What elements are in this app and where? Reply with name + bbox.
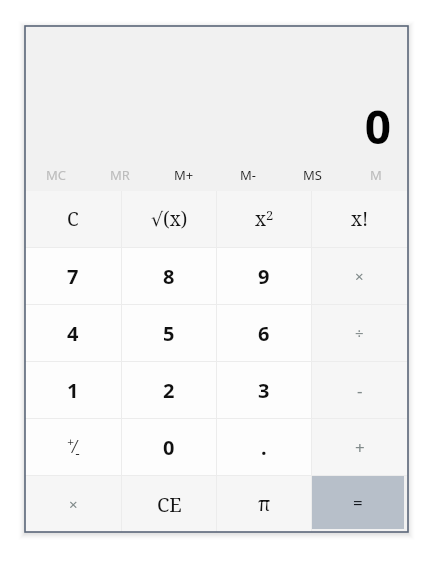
staticText: x!: [351, 206, 369, 232]
staticText: -: [357, 379, 363, 402]
button[interactable]: Clear: [25, 191, 121, 247]
staticText: =: [353, 491, 363, 514]
button[interactable]: 0: [122, 419, 216, 475]
button[interactable]: Divide: [312, 305, 407, 361]
staticText: 0: [364, 95, 391, 158]
button[interactable]: Add: [312, 419, 407, 475]
staticText: ÷: [355, 323, 364, 343]
staticText: 7: [67, 263, 79, 290]
button[interactable]: MS: [280, 158, 344, 191]
button[interactable]: 8: [122, 248, 216, 304]
button[interactable]: Factorial: [312, 191, 407, 247]
button[interactable]: M+: [152, 158, 216, 191]
button[interactable]: 2: [122, 362, 216, 418]
button[interactable]: Square: [217, 191, 311, 247]
staticText: ×: [355, 266, 364, 286]
button[interactable]: 5: [122, 305, 216, 361]
button[interactable]: MC: [25, 158, 88, 191]
button[interactable]: 3: [217, 362, 311, 418]
staticText: 9: [258, 263, 270, 290]
button[interactable]: 4: [25, 305, 121, 361]
staticText: 6: [258, 320, 270, 347]
button[interactable]: Subtract: [312, 362, 407, 418]
button[interactable]: 1: [25, 362, 121, 418]
staticText: M: [370, 166, 382, 184]
button[interactable]: 7: [25, 248, 121, 304]
button[interactable]: Square root: [122, 191, 216, 247]
button[interactable]: Pi: [217, 476, 311, 532]
staticText: 3: [258, 377, 270, 404]
staticText: 5: [163, 320, 175, 347]
staticText: 0: [163, 434, 175, 461]
button[interactable]: Decimal point: [217, 419, 311, 475]
button[interactable]: Equals: [312, 476, 404, 529]
staticText: ×: [69, 494, 78, 514]
button[interactable]: Backspace: [25, 476, 121, 532]
staticText: MS: [303, 166, 322, 184]
button[interactable]: Plus minus: [25, 419, 121, 475]
staticText: 2: [163, 377, 175, 404]
staticText: 8: [163, 263, 175, 290]
staticText: √(x): [151, 206, 188, 232]
button[interactable]: MR: [88, 158, 152, 191]
staticText: +: [355, 436, 365, 459]
staticText: C: [67, 206, 79, 232]
button[interactable]: Clear entry: [122, 476, 216, 532]
button[interactable]: M: [344, 158, 408, 191]
staticText: MR: [110, 166, 130, 184]
staticText: 4: [67, 320, 79, 347]
staticText: +⁄-: [67, 433, 80, 462]
staticText: .: [261, 434, 267, 461]
button[interactable]: 9: [217, 248, 311, 304]
staticText: MC: [46, 166, 67, 184]
staticText: M-: [240, 166, 256, 184]
staticText: π: [258, 491, 271, 517]
staticText: 1: [67, 377, 79, 404]
staticText: x2: [255, 206, 274, 232]
button[interactable]: 6: [217, 305, 311, 361]
button[interactable]: Multiply: [312, 248, 407, 304]
button[interactable]: M-: [216, 158, 280, 191]
staticText: M+: [174, 166, 194, 184]
staticText: CE: [157, 491, 182, 518]
